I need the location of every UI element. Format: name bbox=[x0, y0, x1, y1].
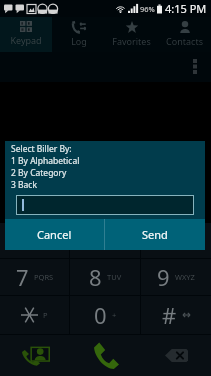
button[interactable]: More options bbox=[185, 54, 205, 78]
button[interactable]: Keypad bbox=[0, 17, 52, 52]
button[interactable]: 5 bbox=[70, 223, 140, 258]
staticText: # bbox=[162, 300, 177, 330]
button[interactable]: 7 bbox=[0, 259, 69, 295]
staticText: Keypad bbox=[10, 34, 42, 46]
staticText: 1 By Alphabetical bbox=[11, 155, 80, 167]
button[interactable]: Call bbox=[71, 335, 141, 376]
button[interactable]: 4 bbox=[0, 223, 69, 258]
button[interactable]: 9 bbox=[141, 259, 211, 295]
button[interactable]: 8 bbox=[70, 259, 140, 295]
button[interactable]: Log bbox=[52, 17, 105, 52]
staticText: Send bbox=[142, 227, 168, 242]
staticText: 6 bbox=[158, 226, 171, 256]
staticText: Log bbox=[71, 35, 87, 47]
staticText: PQRS bbox=[34, 272, 54, 282]
button[interactable]: 0 bbox=[70, 296, 140, 334]
staticText: Contacts bbox=[166, 35, 203, 47]
staticText: 8 bbox=[89, 262, 102, 292]
staticText: 5 bbox=[91, 226, 104, 256]
button[interactable]: # bbox=[141, 296, 211, 334]
staticText: 9 bbox=[157, 262, 170, 292]
button[interactable]: Backspace bbox=[141, 335, 211, 376]
staticText: 3 Back bbox=[11, 179, 37, 191]
button[interactable]: Send bbox=[105, 219, 205, 250]
staticText: 2 By Category bbox=[11, 167, 67, 179]
button[interactable]: Add to contacts bbox=[0, 335, 71, 376]
button[interactable]: Contacts bbox=[158, 17, 211, 52]
staticText: 4 bbox=[19, 226, 32, 256]
button[interactable]: Cancel bbox=[5, 219, 104, 250]
staticText: 0 bbox=[94, 300, 107, 330]
staticText: Cancel bbox=[37, 227, 72, 242]
staticText: + bbox=[112, 310, 117, 320]
staticText: 7 bbox=[16, 262, 29, 292]
staticText: TUV bbox=[107, 272, 122, 282]
staticText: 4:15 PM bbox=[165, 1, 207, 16]
staticText: WXYZ bbox=[175, 272, 195, 282]
staticText: Favorites bbox=[112, 35, 151, 47]
staticText: Select Biller By: bbox=[11, 143, 72, 155]
staticText: GHI bbox=[37, 236, 51, 246]
button[interactable]: Favorites bbox=[105, 17, 158, 52]
staticText: 96% bbox=[140, 4, 155, 14]
staticText: P bbox=[43, 310, 48, 320]
button[interactable]: P bbox=[0, 296, 69, 334]
button[interactable]: 6 bbox=[141, 223, 211, 258]
